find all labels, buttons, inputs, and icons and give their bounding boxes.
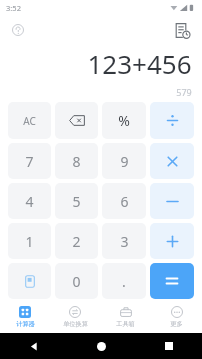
- button[interactable]: Scientific keypad: [8, 263, 51, 299]
- button[interactable]: 单位换算: [50, 301, 100, 333]
- staticText: 5: [72, 192, 81, 211]
- staticText: AC: [23, 114, 36, 128]
- staticText: 工具箱: [116, 320, 135, 328]
- staticText: 9: [120, 152, 129, 171]
- button[interactable]: 5: [55, 183, 98, 219]
- button[interactable]: 7: [8, 143, 51, 179]
- staticText: 1: [25, 232, 34, 251]
- button[interactable]: 2: [55, 223, 98, 259]
- button[interactable]: 工具箱: [100, 301, 151, 333]
- button[interactable]: Plus: [150, 223, 194, 259]
- button[interactable]: Help: [7, 19, 29, 41]
- staticText: %: [118, 111, 130, 130]
- button[interactable]: 更多: [151, 301, 202, 333]
- button[interactable]: .: [102, 263, 146, 299]
- button[interactable]: AC: [8, 102, 51, 139]
- staticText: 3: [120, 232, 129, 251]
- button[interactable]: %: [102, 102, 146, 139]
- staticText: 计算器: [16, 320, 35, 328]
- staticText: 2: [72, 232, 81, 251]
- button[interactable]: 3: [102, 223, 146, 259]
- staticText: .: [122, 272, 126, 291]
- button[interactable]: 8: [55, 143, 98, 179]
- staticText: 8: [72, 152, 81, 171]
- staticText: 7: [25, 152, 34, 171]
- staticText: 更多: [170, 320, 183, 328]
- staticText: 单位换算: [63, 320, 88, 328]
- staticText: 4: [25, 192, 34, 211]
- button[interactable]: 计算器: [0, 301, 50, 333]
- button[interactable]: History: [169, 17, 195, 43]
- staticText: 123+456: [87, 46, 192, 81]
- staticText: 579: [176, 86, 192, 98]
- button[interactable]: Equals: [150, 263, 194, 299]
- button[interactable]: 9: [102, 143, 146, 179]
- button[interactable]: 4: [8, 183, 51, 219]
- button[interactable]: 0: [55, 263, 98, 299]
- button[interactable]: Multiply: [150, 143, 194, 179]
- staticText: 3:52: [6, 3, 21, 13]
- staticText: 6: [120, 192, 129, 211]
- staticText: 0: [72, 272, 81, 291]
- button[interactable]: 1: [8, 223, 51, 259]
- button[interactable]: Minus: [150, 183, 194, 219]
- button[interactable]: 6: [102, 183, 146, 219]
- button[interactable]: Backspace: [55, 102, 98, 139]
- button[interactable]: Divide: [150, 102, 194, 139]
